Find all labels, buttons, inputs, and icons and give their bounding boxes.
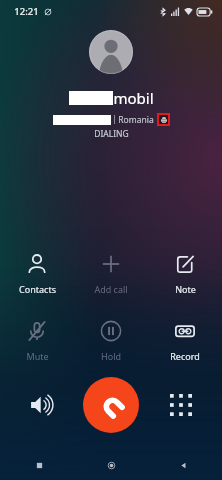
staticText: Romania bbox=[118, 114, 154, 126]
button[interactable]: Note bbox=[148, 248, 222, 299]
staticText: Record bbox=[170, 350, 200, 362]
staticText: Contacts bbox=[19, 283, 56, 295]
button[interactable]: Speaker bbox=[0, 377, 83, 433]
button[interactable]: Contacts bbox=[0, 248, 74, 299]
staticText: Mute bbox=[26, 350, 49, 362]
staticText: DIALING bbox=[94, 128, 129, 140]
button[interactable]: Mute bbox=[0, 315, 74, 366]
button[interactable]: Hold bbox=[74, 315, 148, 366]
staticText: Note bbox=[175, 283, 196, 295]
staticText: Add call bbox=[94, 283, 128, 295]
staticText: mobil bbox=[113, 88, 154, 108]
staticText: Hold bbox=[101, 350, 121, 362]
button[interactable]: Dialpad bbox=[139, 377, 222, 433]
button[interactable]: Back bbox=[170, 452, 196, 478]
button[interactable]: SIM bbox=[159, 115, 168, 124]
button[interactable]: Home bbox=[98, 452, 124, 478]
staticText: 12:21 bbox=[14, 5, 39, 18]
button[interactable]: Record bbox=[148, 315, 222, 366]
button[interactable]: Add call bbox=[74, 248, 148, 299]
button[interactable]: End call bbox=[83, 377, 139, 433]
button[interactable]: Recents bbox=[26, 452, 52, 478]
